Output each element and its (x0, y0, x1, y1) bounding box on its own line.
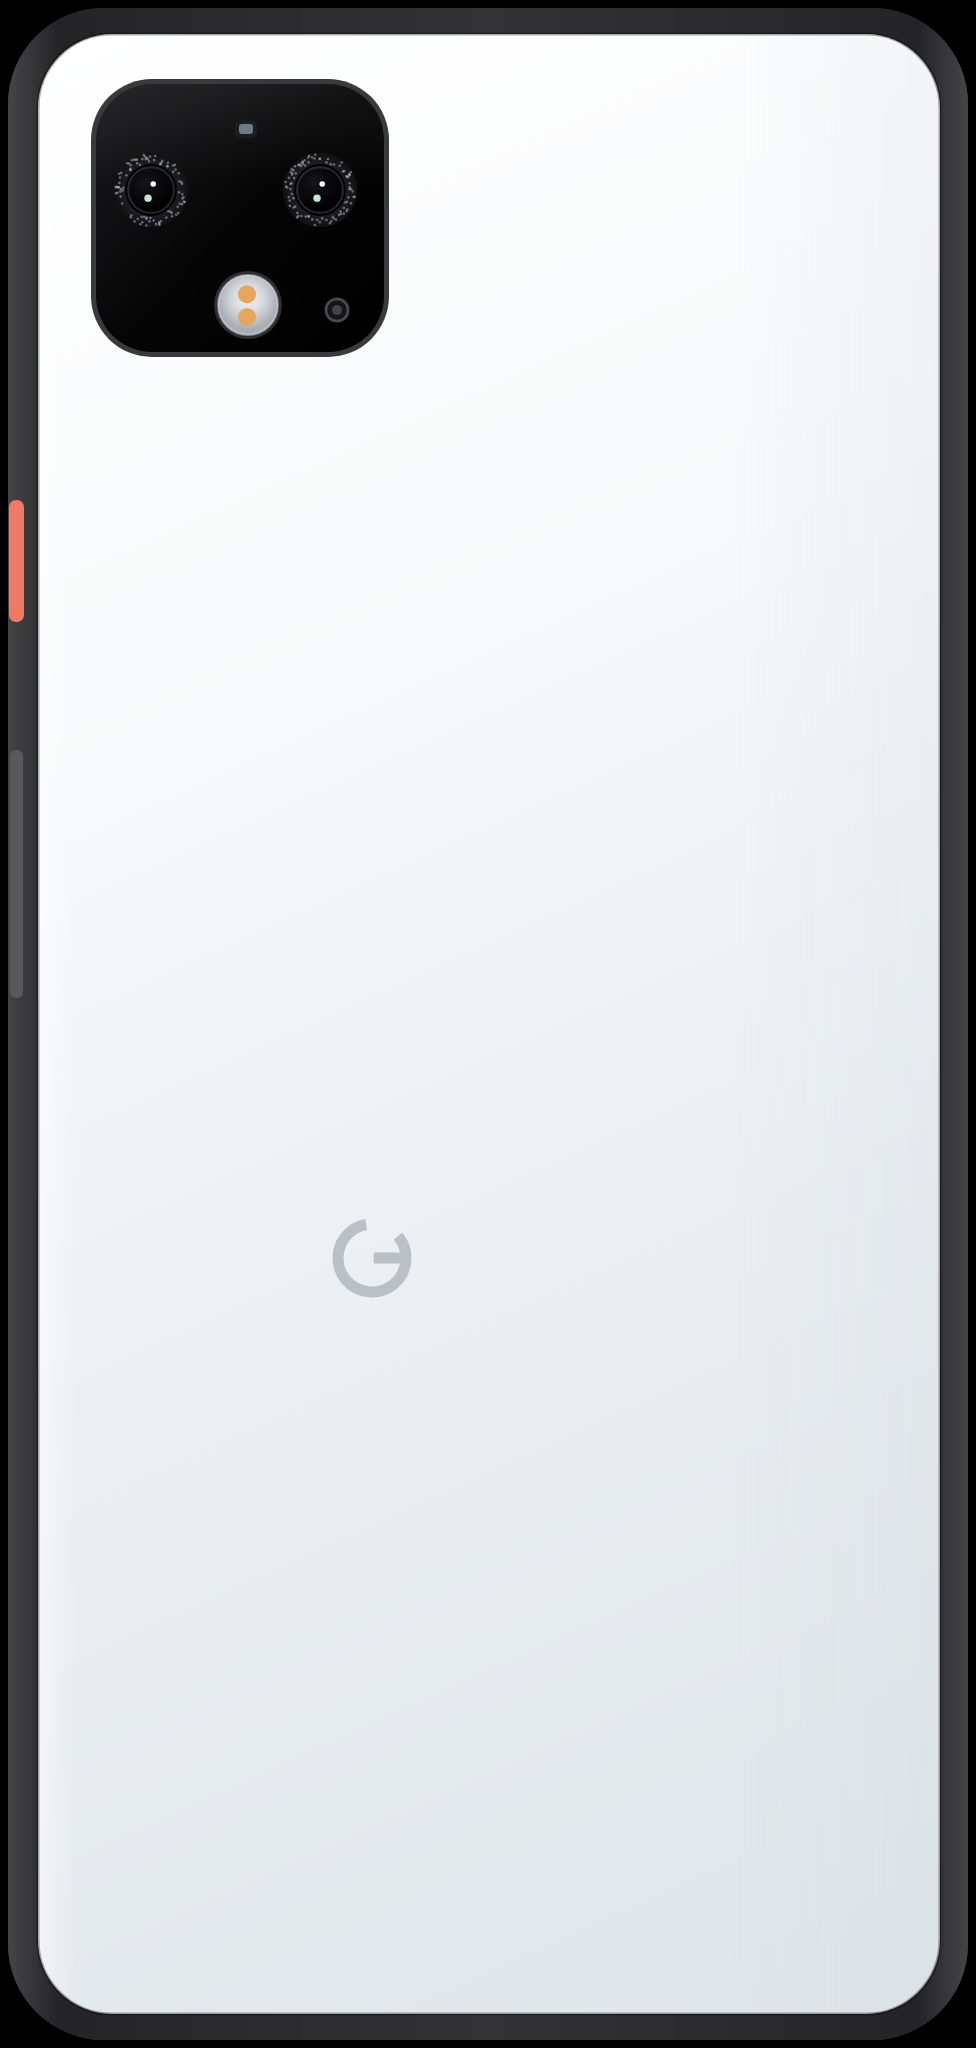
button[interactable]: Google Pixel 4 phone, back view, Clearly… (0, 0, 976, 2048)
